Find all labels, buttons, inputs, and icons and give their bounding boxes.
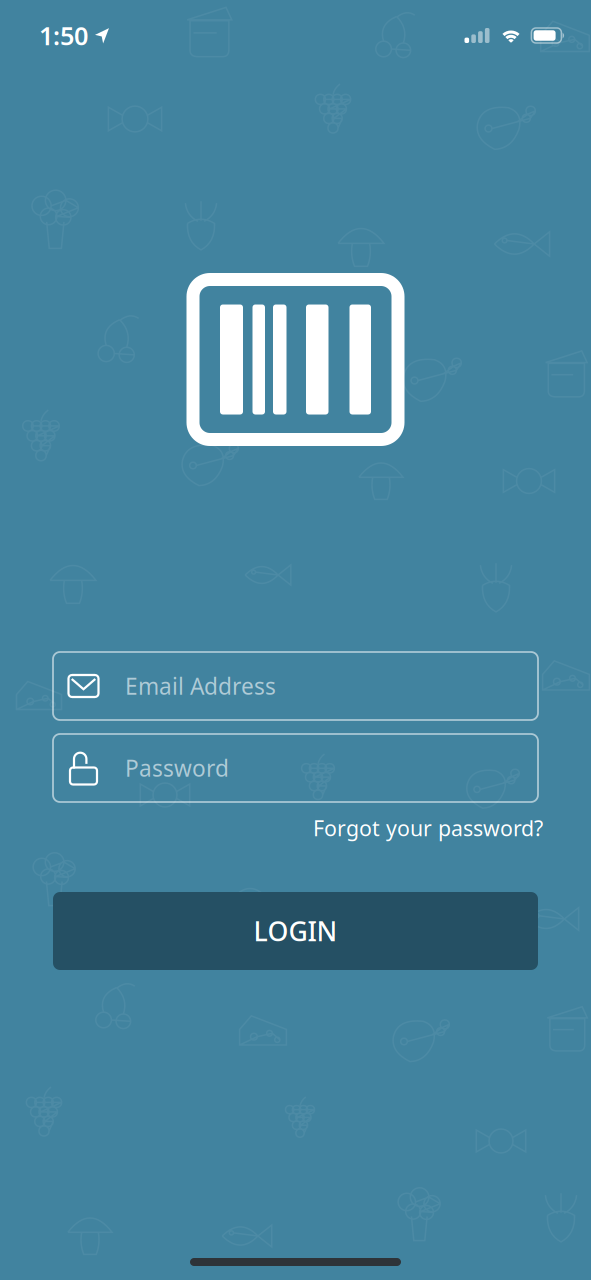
staticText: 1:50 xyxy=(39,19,88,52)
staticText: Email Address xyxy=(125,671,276,701)
button[interactable]: Forgot your password? xyxy=(313,812,543,844)
button[interactable]: Password xyxy=(53,734,538,802)
staticText: LOGIN xyxy=(253,913,337,949)
button[interactable]: LOGIN xyxy=(53,892,538,970)
staticText: Forgot your password? xyxy=(313,814,543,842)
button[interactable]: Email Address xyxy=(53,652,538,720)
staticText: Password xyxy=(125,753,229,783)
